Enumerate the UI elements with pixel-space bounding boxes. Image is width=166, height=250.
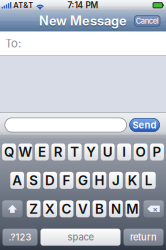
staticText: 7:14 PM (67, 0, 98, 10)
staticText: B (95, 201, 104, 217)
button[interactable]: F (60, 172, 73, 189)
button[interactable]: U (101, 143, 115, 160)
button[interactable]: E (35, 143, 49, 160)
staticText: O (136, 144, 146, 160)
button[interactable]: D (43, 172, 57, 189)
staticText: AT&T (13, 1, 33, 10)
button[interactable]: C (60, 200, 73, 217)
staticText: Y (86, 144, 96, 160)
button[interactable]: J (109, 172, 123, 189)
staticText: G (78, 172, 88, 188)
button[interactable]: To: (0, 31, 166, 56)
button[interactable]: O (134, 143, 147, 160)
staticText: J (112, 172, 120, 188)
staticText: Send (133, 119, 157, 131)
staticText: New Message (39, 14, 127, 29)
staticText: T (70, 144, 79, 160)
staticText: I (122, 144, 126, 160)
button[interactable]: A (10, 172, 24, 189)
button[interactable]: I (117, 143, 131, 160)
staticText: D (45, 172, 55, 188)
staticText: W (18, 144, 32, 160)
button[interactable]: X (43, 200, 57, 217)
button[interactable]: T (68, 143, 82, 160)
staticText: Q (4, 144, 14, 160)
button[interactable]: Z (27, 200, 40, 217)
staticText: space (67, 232, 93, 243)
staticText: return (130, 232, 157, 243)
staticText: × (152, 204, 157, 214)
staticText: A (12, 172, 22, 188)
staticText: F (62, 172, 70, 188)
button[interactable]: Delete (143, 200, 164, 217)
button[interactable]: space (40, 229, 120, 246)
staticText: N (111, 201, 121, 217)
button[interactable]: W (18, 143, 32, 160)
button[interactable]: Send (130, 118, 160, 132)
button[interactable]: Cancel (134, 16, 160, 26)
button[interactable]: V (76, 200, 90, 217)
button[interactable]: N (109, 200, 123, 217)
staticText: X (45, 201, 55, 217)
staticText: R (54, 144, 63, 160)
staticText: L (145, 172, 153, 188)
button[interactable]: B (92, 200, 106, 217)
staticText: U (103, 144, 113, 160)
button[interactable]: M (125, 200, 139, 217)
button[interactable]: .?123 (2, 229, 37, 246)
staticText: E (38, 144, 46, 160)
button[interactable]: return (123, 229, 163, 246)
staticText: New Message (39, 13, 127, 29)
button[interactable]: S (27, 172, 40, 189)
button[interactable]: Y (84, 143, 98, 160)
staticText: H (94, 172, 104, 188)
staticText: M (126, 201, 138, 217)
button[interactable]: K (125, 172, 139, 189)
staticText: .?123 (8, 232, 31, 243)
staticText: Cancel (136, 16, 159, 25)
staticText: P (152, 144, 161, 160)
staticText: K (128, 172, 137, 188)
button[interactable] (5, 118, 127, 132)
button[interactable]: G (76, 172, 90, 189)
staticText: To: (5, 36, 21, 50)
staticText: C (61, 201, 71, 217)
staticText: V (78, 201, 88, 217)
button[interactable]: L (142, 172, 156, 189)
button[interactable]: Q (2, 143, 16, 160)
button[interactable]: Shift (2, 200, 22, 217)
staticText: Z (29, 201, 38, 217)
button[interactable]: H (92, 172, 106, 189)
button[interactable]: R (51, 143, 65, 160)
button[interactable]: P (150, 143, 164, 160)
staticText: S (29, 172, 38, 188)
